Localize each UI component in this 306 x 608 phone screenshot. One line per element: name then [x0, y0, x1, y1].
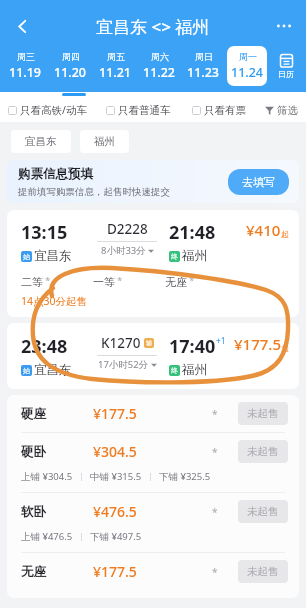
staticText: * [212, 407, 218, 421]
staticText: 周三 [17, 51, 35, 62]
button[interactable]: 软卧 [21, 493, 288, 530]
staticText: 周五 [107, 51, 125, 62]
staticText: 无座 [21, 564, 93, 580]
staticText: 21:48 [169, 220, 216, 245]
button[interactable]: 宜昌东 [11, 130, 71, 153]
staticText: K1270 [101, 334, 141, 352]
button[interactable]: 周日 [183, 46, 223, 86]
staticText: ¥304.5 [93, 442, 191, 461]
staticText: 下铺 ¥325.5 [159, 470, 211, 483]
staticText: 11.22 [143, 64, 176, 81]
staticText: 辅 [146, 339, 152, 347]
button[interactable]: 周五 [95, 46, 135, 86]
staticText: 周一 [239, 51, 257, 62]
staticText: 只看高铁/动车 [20, 103, 87, 117]
button[interactable]: 周一 [227, 46, 267, 86]
staticText: * [212, 505, 218, 519]
staticText: 购票信息预填 [18, 166, 93, 182]
button[interactable]: 只看普通车 [106, 104, 192, 117]
button[interactable]: 周三 [5, 46, 46, 86]
button[interactable]: 周四 [50, 46, 91, 86]
staticText: 未起售 [247, 565, 279, 578]
staticText: 筛选 [277, 104, 298, 117]
button[interactable]: 筛选 [265, 104, 298, 117]
staticText: 软卧 [21, 504, 93, 520]
staticText: 11.19 [9, 64, 42, 81]
button[interactable]: 23:48 [7, 323, 299, 389]
staticText: 11.21 [99, 64, 132, 81]
button[interactable]: 周六 [139, 46, 179, 86]
staticText: 宜昌东 [34, 362, 72, 378]
staticText: 未起售 [247, 505, 279, 518]
staticText: ¥476.5 [93, 502, 191, 521]
button[interactable]: More options [262, 9, 306, 43]
staticText: 福州 [182, 248, 207, 264]
staticText: 未起售 [247, 407, 279, 420]
button[interactable]: 硬卧 [21, 433, 288, 470]
staticText: ¥177.5 [93, 562, 191, 581]
staticText: 硬卧 [21, 444, 93, 460]
staticText: 8小时33分 [101, 244, 146, 257]
staticText: 中铺 ¥315.5 [90, 470, 142, 483]
staticText: 周日 [195, 51, 213, 62]
staticText: 始 [23, 252, 30, 261]
staticText: 无座 [165, 275, 187, 289]
staticText: 宜昌东 [34, 248, 72, 264]
staticText: 始 [23, 366, 30, 375]
staticText: 11.23 [187, 64, 220, 81]
staticText: 去填写 [242, 175, 275, 189]
staticText: 17:40 [169, 334, 216, 359]
staticText: 23:48 [21, 334, 68, 359]
staticText: 宜昌东 <> 福州 [96, 15, 210, 38]
button[interactable]: 日历 [269, 46, 303, 86]
staticText: 只看普通车 [118, 104, 171, 117]
button[interactable]: Back [0, 9, 44, 43]
staticText: ¥177.5 [93, 404, 191, 423]
staticText: 只看有票 [204, 104, 246, 117]
staticText: 日历 [278, 69, 294, 79]
staticText: 下铺 ¥497.5 [90, 530, 142, 543]
button[interactable]: 只看有票 [192, 104, 265, 117]
staticText: 11.20 [54, 64, 87, 81]
staticText: * [212, 445, 218, 459]
staticText: 福州 [182, 362, 207, 378]
button[interactable]: 无座 [21, 553, 288, 590]
staticText: * [212, 565, 218, 579]
staticText: 17小时52分 [98, 358, 149, 371]
staticText: 起 [281, 343, 289, 353]
staticText: 11.24 [231, 64, 264, 81]
staticText: 未起售 [247, 445, 279, 458]
button[interactable]: 13:15 [7, 210, 299, 317]
staticText: 上铺 ¥304.5 [21, 470, 73, 483]
staticText: D2228 [107, 220, 148, 238]
staticText: 二等 [21, 275, 43, 289]
button[interactable]: 只看高铁/动车 [8, 103, 106, 117]
staticText: 一等 [93, 275, 115, 289]
button[interactable]: 福州 [80, 130, 129, 153]
staticText: * [187, 274, 195, 286]
staticText: 14点30分起售 [21, 294, 88, 308]
staticText: 上铺 ¥476.5 [21, 530, 73, 543]
staticText: * [43, 274, 51, 286]
staticText: 13:15 [21, 220, 68, 245]
staticText: 福州 [94, 135, 115, 148]
staticText: 起 [281, 229, 289, 239]
staticText: 终 [171, 366, 178, 375]
staticText: * [115, 274, 123, 286]
staticText: 宜昌东 [25, 135, 57, 148]
staticText: 周六 [151, 51, 169, 62]
staticText: 硬座 [21, 406, 93, 422]
staticText: ¥177.5 [234, 334, 281, 354]
staticText: 周四 [62, 51, 80, 62]
staticText: ¥410 [246, 220, 281, 240]
staticText: +1 [216, 335, 226, 347]
staticText: 提前填写购票信息，起售时快速提交 [18, 186, 170, 198]
button[interactable]: 硬座 [21, 395, 288, 432]
button[interactable]: 去填写 [228, 169, 289, 195]
staticText: 终 [171, 252, 178, 261]
